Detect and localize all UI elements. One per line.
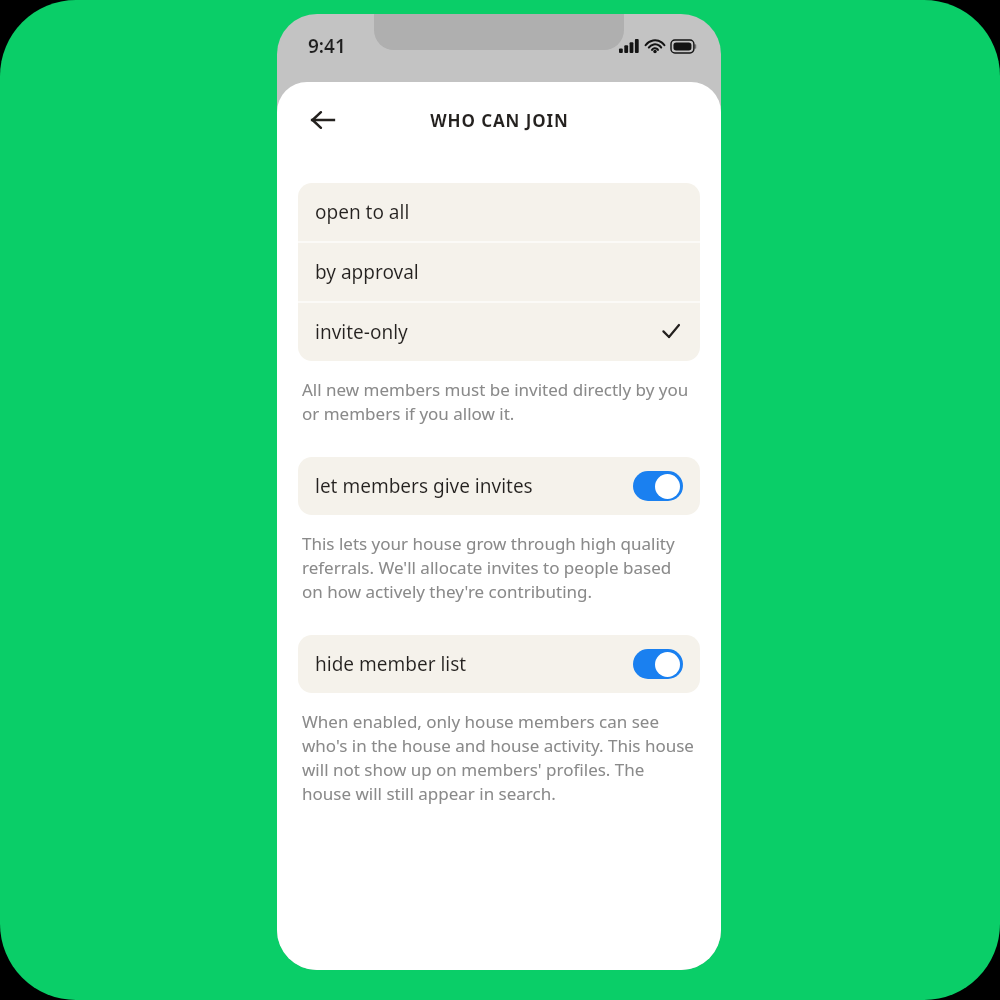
staticText: let members give invites [315, 473, 533, 499]
staticText: WHO CAN JOIN [430, 109, 569, 132]
button[interactable]: by approval [298, 243, 700, 301]
other: Toggle on [633, 471, 683, 501]
button[interactable]: invite-only [298, 303, 700, 361]
staticText: open to all [315, 199, 410, 225]
staticText: 9:41 [308, 33, 346, 59]
staticText: When enabled, only house members can see… [302, 710, 696, 805]
staticText: All new members must be invited directly… [302, 378, 696, 425]
staticText: This lets your house grow through high q… [302, 532, 696, 603]
button[interactable]: hide member list [298, 635, 700, 693]
other: Toggle on [633, 649, 683, 679]
button[interactable]: open to all [298, 183, 700, 241]
staticText: by approval [315, 259, 419, 285]
button[interactable]: Back [299, 96, 347, 144]
staticText: invite-only [315, 319, 408, 345]
staticText: hide member list [315, 651, 467, 677]
button[interactable]: let members give invites [298, 457, 700, 515]
